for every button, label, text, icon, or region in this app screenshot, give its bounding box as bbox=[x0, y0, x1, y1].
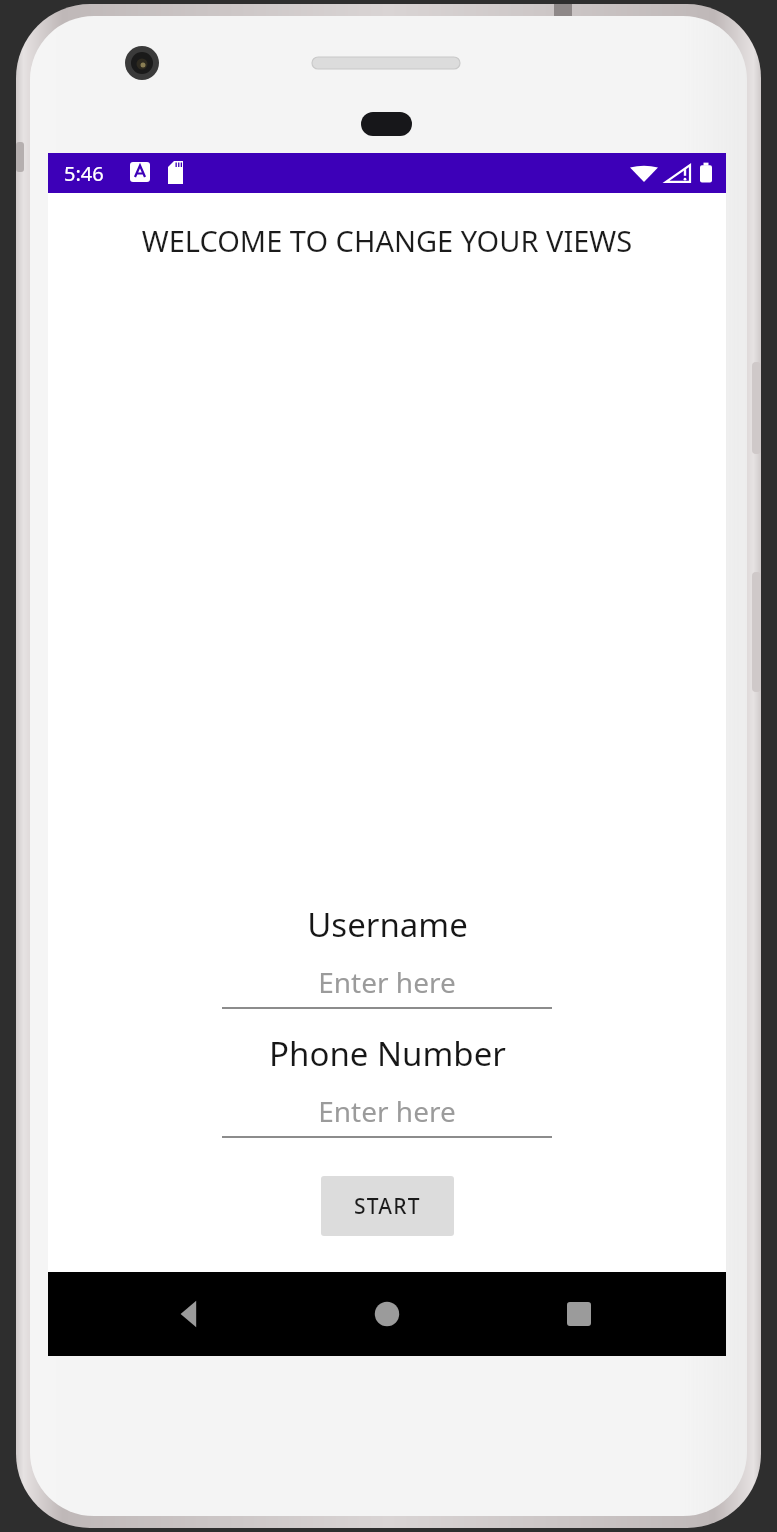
staticText: Username bbox=[307, 902, 468, 947]
staticText: START bbox=[354, 1192, 421, 1221]
staticText: 5:46 bbox=[64, 160, 104, 187]
staticText: Phone Number bbox=[269, 1031, 506, 1076]
staticText: Enter here bbox=[318, 1092, 456, 1130]
button[interactable]: Home bbox=[356, 1283, 418, 1345]
button[interactable]: Back bbox=[158, 1283, 220, 1345]
staticText: WELCOME TO CHANGE YOUR VIEWS bbox=[48, 221, 726, 260]
button[interactable]: Recent apps bbox=[548, 1283, 610, 1345]
button[interactable]: START bbox=[321, 1176, 454, 1236]
button[interactable]: Enter here bbox=[222, 963, 552, 1009]
button[interactable]: Enter here bbox=[222, 1092, 552, 1138]
staticText: Enter here bbox=[318, 963, 456, 1001]
